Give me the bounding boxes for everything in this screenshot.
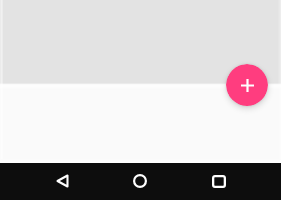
button[interactable]: Add (226, 64, 268, 106)
button[interactable]: Recents (201, 163, 237, 199)
button[interactable]: Home (122, 163, 158, 199)
button[interactable]: Back (44, 163, 80, 199)
